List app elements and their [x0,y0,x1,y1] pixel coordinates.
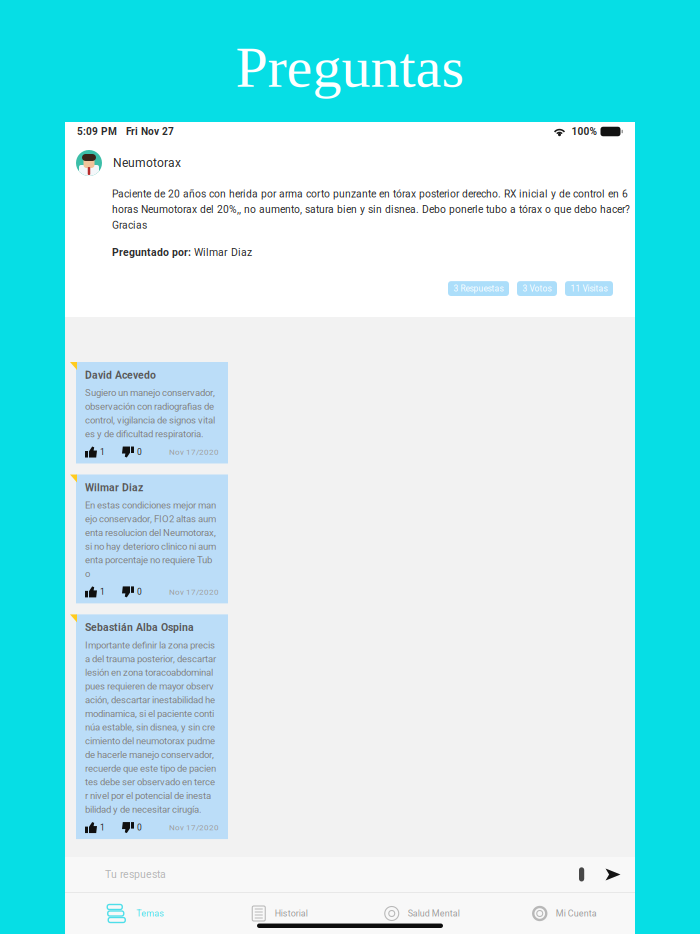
staticText: Sebastián Alba Ospina [85,621,194,634]
staticText: horas Neumotorax del 20%,, no aumento, s… [112,204,630,216]
staticText: Importante definir la zona precis [85,640,215,651]
staticText: Neumotorax [113,156,181,170]
staticText: Paciente de 20 años con herida por arma … [112,188,628,200]
staticText: Temas [136,908,164,919]
button[interactable]: 3 Respuestas [448,281,509,296]
staticText: control, vigilancia de signos vital [85,415,215,426]
staticText: 5:09 PM [77,126,117,137]
staticText: a del trauma posterior, descartar [85,653,216,664]
staticText: 1 [100,447,105,457]
staticText: 100% [571,126,596,137]
button[interactable]: 3 Votos [517,281,557,296]
staticText: Fri Nov 27 [126,126,174,137]
button[interactable]: Historial [207,893,350,934]
staticText: Preguntas [235,35,464,99]
staticText: si no hay deterioro clinico ni aum [85,541,216,552]
staticText: Tu respuesta [105,868,166,881]
button[interactable]: Salud Mental [350,893,492,934]
staticText: enta porcentaje no requiere Tub [85,554,212,566]
staticText: 1 [100,587,105,597]
staticText: Historial [275,908,308,919]
button[interactable]: David Acevedo [76,362,228,463]
staticText: 3 Respuestas [453,284,503,293]
staticText: ejo conservador, FIO2 altas aum [85,513,216,525]
staticText: enta resolucion del Neumotorax, [85,527,216,538]
button[interactable]: Wilmar Diaz [76,474,228,603]
staticText: 0 [137,447,142,457]
staticText: Salud Mental [408,908,460,919]
staticText: 0 [137,587,142,597]
staticText: bilidad y de necesitar cirugía. [85,804,202,815]
staticText: tes debe ser observado en terce [85,776,215,788]
staticText: En estas condiciones mejor man [85,500,216,511]
staticText: cimiento del neumotorax pudme [85,735,215,747]
staticText: lesión en zona toracoabdominal [85,667,213,678]
staticText: r nivel por el potencial de inesta [85,790,211,801]
staticText: Mi Cuenta [556,908,597,919]
staticText: es y de dificultad respiratoria. [85,428,204,439]
staticText: 3 Votos [522,284,551,293]
button[interactable]: Enviar [597,857,629,892]
staticText: 11 Visitas [570,284,607,293]
button[interactable]: Adjuntar archivo [567,857,597,892]
staticText: ación, descartar inestabilidad he [85,694,215,706]
staticText: recuerde que este tipo de pacien [85,763,216,774]
staticText: o [85,568,90,579]
staticText: Nov 17/2020 [169,447,219,457]
staticText: pues requieren de mayor observ [85,681,214,692]
staticText: núa estable, sin disnea, y sin cre [85,722,215,733]
staticText: Wilmar Diaz [85,481,143,494]
staticText: Nov 17/2020 [169,823,219,832]
staticText: Wilmar Diaz [194,246,252,258]
staticText: de hacerle manejo conservador, [85,749,214,760]
staticText: Nov 17/2020 [169,587,219,597]
button[interactable]: Tu respuesta [105,857,567,892]
staticText: 0 [137,823,142,833]
staticText: modinamica, si el paciente conti [85,708,214,719]
staticText: Gracias [112,219,147,231]
staticText: Sugiero un manejo conservador, [85,387,215,398]
button[interactable]: 11 Visitas [565,281,613,296]
staticText: David Acevedo [85,369,156,381]
button[interactable]: Mi Cuenta [492,893,635,934]
button[interactable]: Sebastián Alba Ospina [76,614,228,839]
staticText: observación con radiografias de [85,401,214,412]
staticText: Preguntado por: [112,246,194,258]
staticText: 1 [100,823,105,833]
button[interactable]: Temas [65,893,207,934]
